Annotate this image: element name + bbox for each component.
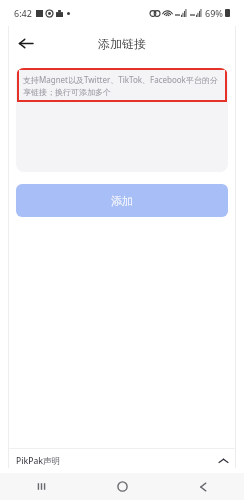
button[interactable]: 添加	[16, 184, 228, 217]
button[interactable]: 支持Magnet以及Twitter、TikTok、Facebook平台的分享链接…	[16, 68, 228, 172]
button[interactable]: Back	[12, 30, 38, 56]
staticText: 添加链接	[98, 36, 146, 51]
button[interactable]: Home	[82, 473, 163, 500]
staticText: 添加	[111, 194, 133, 208]
button[interactable]: Recents	[0, 473, 82, 500]
staticText: 69%	[205, 7, 223, 19]
button[interactable]: PikPak声明	[16, 449, 228, 473]
button[interactable]: Back	[163, 473, 244, 500]
staticText: 6:42	[14, 7, 32, 19]
staticText: 支持Magnet以及Twitter、TikTok、Facebook平台的分享链接…	[23, 74, 221, 97]
staticText: PikPak声明	[16, 455, 61, 467]
